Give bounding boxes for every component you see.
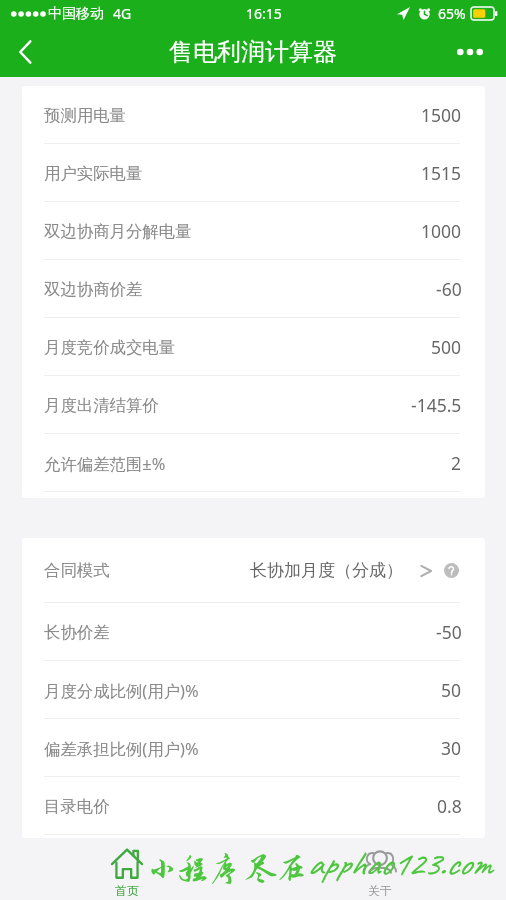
staticText: 1515	[421, 161, 462, 185]
staticText: 关于	[368, 883, 392, 896]
staticText: 65%	[438, 4, 466, 23]
button[interactable]: 长协价差	[22, 603, 485, 661]
button[interactable]: 双边协商月分解电量	[22, 202, 485, 260]
button[interactable]: 月度分成比例(用户)%	[22, 661, 485, 719]
staticText: 16:15	[246, 4, 282, 23]
staticText: 预测用电量	[44, 105, 126, 126]
button[interactable]: 偏差承担比例(用户)%	[22, 719, 485, 777]
button[interactable]: Back	[0, 27, 50, 77]
staticText: 月度出清结算价	[44, 395, 159, 416]
staticText: 中国移动	[48, 5, 104, 23]
button[interactable]: 合同模式	[22, 538, 485, 603]
button[interactable]: 首页	[0, 838, 253, 900]
staticText: 长协加月度（分成）	[250, 560, 403, 581]
staticText: 允许偏差范围±%	[44, 452, 166, 474]
staticText: 30	[441, 736, 462, 760]
staticText: 500	[431, 335, 462, 359]
button[interactable]: 用户实际电量	[22, 144, 485, 202]
staticText: 偏差承担比例(用户)%	[44, 737, 199, 759]
button[interactable]: 月度竞价成交电量	[22, 318, 485, 376]
staticText: 目录电价	[44, 796, 110, 817]
staticText: 售电利润计算器	[169, 37, 337, 67]
staticText: 50	[441, 678, 462, 702]
button[interactable]: 允许偏差范围±%	[22, 434, 485, 492]
staticText: 1500	[421, 103, 462, 127]
button[interactable]: 预测用电量	[22, 86, 485, 144]
button[interactable]: 双边协商价差	[22, 260, 485, 318]
staticText: -50	[436, 620, 462, 644]
staticText: 双边协商月分解电量	[44, 221, 192, 242]
staticText: 0.8	[437, 794, 462, 818]
staticText: 月度分成比例(用户)%	[44, 679, 199, 701]
button[interactable]: 目录电价	[22, 777, 485, 835]
staticText: 月度竞价成交电量	[44, 337, 176, 358]
staticText: 4G	[113, 4, 132, 23]
button[interactable]: 月度出清结算价	[22, 376, 485, 434]
button[interactable]: 关于	[253, 838, 506, 900]
button[interactable]: More options	[434, 27, 506, 77]
staticText: apphao123.com	[307, 841, 492, 885]
staticText: 双边协商价差	[44, 279, 143, 300]
staticText: 用户实际电量	[44, 163, 143, 184]
staticText: 首页	[115, 883, 139, 896]
staticText: 合同模式	[44, 560, 110, 581]
staticText: -60	[436, 277, 462, 301]
staticText: 小程序 尽在	[147, 852, 307, 886]
staticText: -145.5	[411, 393, 462, 417]
staticText: 2	[451, 451, 462, 475]
staticText: 1000	[421, 219, 462, 243]
staticText: 长协价差	[44, 622, 110, 643]
